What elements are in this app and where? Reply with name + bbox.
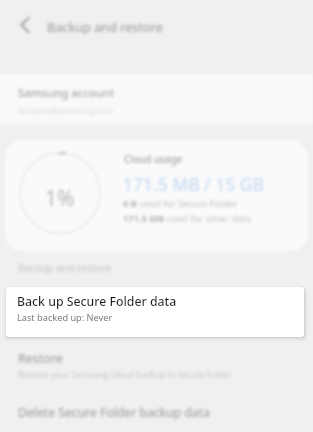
staticText: Restore [18, 350, 63, 367]
staticText: Delete Secure Folder backup data [18, 404, 210, 421]
button[interactable]: 1% [5, 140, 308, 251]
staticText: Backup and restore [18, 261, 112, 275]
button[interactable]: Back up Secure Folder data [0, 284, 313, 330]
staticText: Backup and restore [47, 18, 163, 35]
button[interactable]: Back [13, 13, 37, 37]
staticText: 171.5 MB / 15 GB [123, 172, 264, 196]
button[interactable]: Delete Secure Folder backup data [0, 396, 313, 432]
staticText: Cloud usage [124, 152, 183, 166]
staticText: 0 B used for Secure Folder [123, 197, 238, 210]
staticText: Restore your Samsung Cloud backup to Sec… [18, 369, 233, 381]
staticText: Last backed up: Never [18, 310, 107, 322]
staticText: account@samsung.com [18, 105, 114, 117]
staticText: Last backed up: Never [17, 311, 113, 324]
button[interactable]: Back up Secure Folder data [6, 287, 304, 337]
button[interactable]: Samsung account [0, 74, 313, 124]
staticText: Samsung account [18, 85, 115, 101]
staticText: Back up Secure Folder data [18, 292, 171, 308]
staticText: 1% [45, 184, 75, 213]
staticText: 171.5 MB used for other data [123, 212, 252, 225]
button[interactable]: Restore [0, 340, 313, 388]
staticText: Back up Secure Folder data [17, 293, 177, 310]
